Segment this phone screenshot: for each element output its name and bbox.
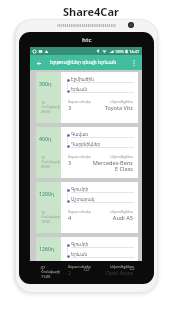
button[interactable]: Back [19,261,64,275]
staticText: 300դ [39,80,52,87]
button[interactable]: 1260դ [36,237,138,261]
staticText: Երևան [71,87,88,92]
staticText: 17 [41,265,46,270]
button[interactable]: 400դ [36,127,138,178]
staticText: 11:00 [41,274,51,279]
staticText: 3 [68,104,72,112]
staticText: Share4Car [63,4,119,19]
staticText: 15 [41,155,46,160]
staticText: 4 [68,214,72,222]
staticText: Էջմիածին [71,77,94,82]
staticText: Հունվարի [41,215,61,219]
button[interactable]: More options [129,58,139,68]
staticText: 100% [115,49,124,54]
staticText: 400դ [39,135,52,142]
staticText: 1200դ [39,190,55,197]
staticText: 14 [41,100,46,105]
staticText: Գյումրի [71,187,89,192]
staticText: Ավտոմեքենա [92,155,133,159]
staticText: 10:00 [41,219,51,224]
staticText: Ավտոմեքենա [92,210,133,214]
staticText: Հունվարի [41,270,61,274]
staticText: Opel Astra [92,269,133,277]
staticText: 3 [68,159,72,167]
button[interactable]: Back [34,58,44,68]
staticText: Ազատ տեղեր [68,265,91,269]
staticText: Ազատ տեղեր [68,155,91,159]
staticText: Toyota Vitz [92,104,133,112]
staticText: Երթուղիներ դեպի Երևան [50,59,117,66]
button[interactable]: Recent apps [109,261,154,275]
staticText: Ավտոմեքենա [92,265,133,269]
staticText: Դարբնիկներ [71,142,101,147]
staticText: Աշտարակ [71,197,95,202]
button[interactable]: 300դ [36,72,138,123]
staticText: Հունվարի [41,105,61,109]
staticText: 09:00 [41,164,51,169]
staticText: Գավառ [71,132,89,137]
staticText: 1260դ [39,245,55,252]
button[interactable]: Home [64,261,109,275]
staticText: Երևան [71,252,88,257]
staticText: Audi A5 [92,214,133,222]
staticText: 2 [68,269,72,277]
staticText: Հունվարի [41,160,61,164]
staticText: Mercedes-Benz E Class [92,159,133,172]
staticText: 08:00 [41,109,51,114]
staticText: 16 [41,210,46,215]
button[interactable]: 1200դ [36,182,138,233]
staticText: Գյումրի [71,242,89,247]
staticText: 14:47 [129,49,140,54]
staticText: htc [82,36,92,44]
staticText: Ազատ տեղեր [68,100,91,104]
staticText: Ավտոմեքենա [92,100,133,104]
staticText: Ազատ տեղեր [68,210,91,214]
